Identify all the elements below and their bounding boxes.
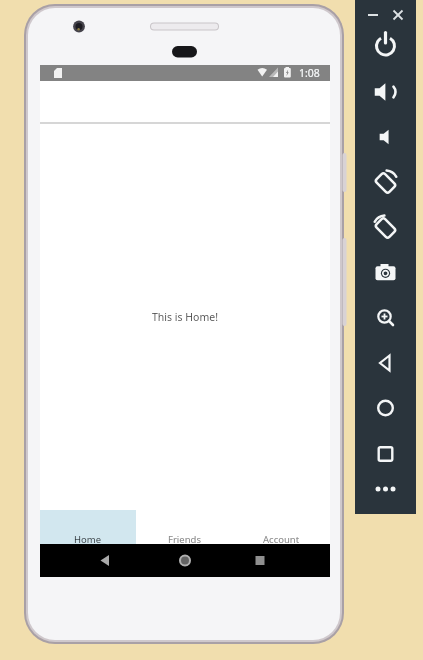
button[interactable] [366,209,404,247]
button[interactable] [366,470,404,508]
button[interactable] [85,544,125,577]
button[interactable] [366,164,404,202]
button[interactable] [165,544,205,577]
staticText: 1:08 [299,66,320,80]
button[interactable] [366,299,404,337]
button[interactable] [366,389,404,427]
button[interactable] [390,5,406,25]
button[interactable]: Home [40,510,136,544]
button[interactable] [366,118,404,156]
staticText: This is Home! [152,310,218,324]
button[interactable] [240,544,280,577]
button[interactable]: Account [233,510,330,544]
button[interactable] [366,26,404,64]
button[interactable]: Friends [136,510,233,544]
staticText: Account [263,533,300,546]
button[interactable] [366,73,404,111]
staticText: Friends [168,533,201,546]
button[interactable] [366,254,404,292]
button[interactable] [365,5,381,25]
button[interactable] [366,435,404,473]
staticText: Home [74,533,102,546]
button[interactable] [366,344,404,382]
